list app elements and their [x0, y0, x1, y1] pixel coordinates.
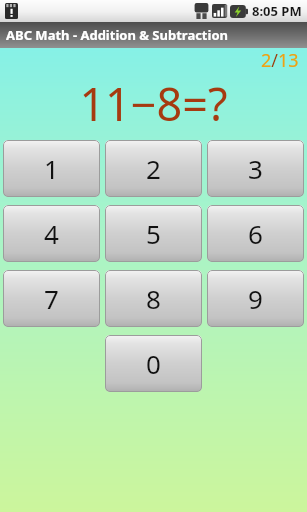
staticText: 5 — [146, 216, 161, 251]
button[interactable]: 6 — [207, 205, 304, 262]
staticText: 11−8=? — [79, 73, 228, 134]
staticText: 3 — [248, 151, 263, 186]
staticText: 8:05 PM — [252, 2, 302, 20]
button[interactable]: 5 — [105, 205, 202, 262]
button[interactable]: 1 — [3, 140, 100, 197]
button[interactable]: 2 — [105, 140, 202, 197]
other: SD card warning — [5, 3, 18, 19]
button[interactable]: 8 — [105, 270, 202, 327]
button[interactable]: 0 — [105, 335, 202, 392]
staticText: 2 — [146, 151, 161, 186]
staticText: 8 — [146, 281, 161, 316]
staticText: ABC Math - Addition & Subtraction — [6, 26, 228, 44]
staticText: 9 — [248, 281, 263, 316]
staticText: 6 — [248, 216, 263, 251]
button[interactable]: 3 — [207, 140, 304, 197]
button[interactable]: 4 — [3, 205, 100, 262]
staticText: 1 — [44, 151, 59, 186]
staticText: 4 — [44, 216, 59, 251]
button[interactable]: 9 — [207, 270, 304, 327]
staticText: 2/13 — [261, 48, 299, 72]
staticText: 0 — [146, 346, 161, 381]
staticText: 7 — [44, 281, 59, 316]
button[interactable]: 7 — [3, 270, 100, 327]
